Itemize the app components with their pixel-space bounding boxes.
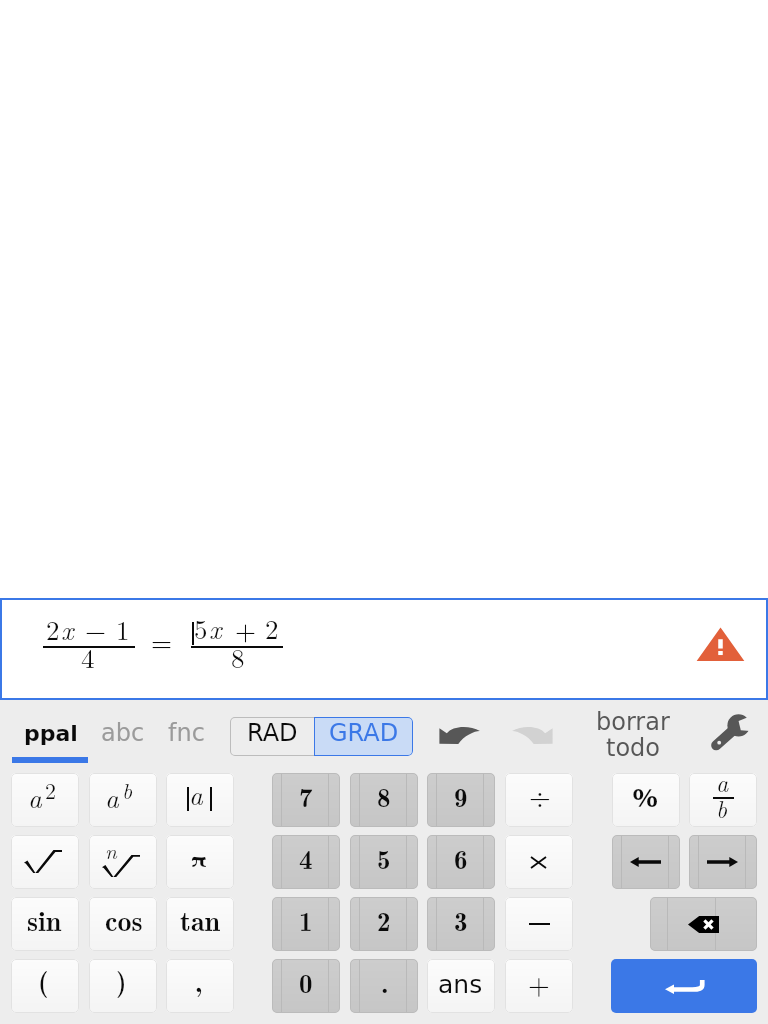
button[interactable]: Redo <box>503 714 563 754</box>
staticText: RAD <box>247 719 298 747</box>
staticText: 7 <box>299 776 313 815</box>
button[interactable]: abc <box>94 708 152 760</box>
staticText: 5 <box>377 838 391 877</box>
staticText: + <box>235 618 257 645</box>
button[interactable]: abs <box>166 773 234 827</box>
button[interactable]: a2 <box>11 773 79 827</box>
staticText: fnc <box>168 719 205 747</box>
button[interactable]: 1 <box>272 897 340 951</box>
button[interactable]: , <box>166 959 234 1013</box>
staticText: a <box>716 773 729 799</box>
staticText: a <box>105 778 119 816</box>
staticText: 5 <box>194 609 208 647</box>
staticText: ppal <box>24 721 78 747</box>
staticText: 4 <box>299 838 313 877</box>
button[interactable]: 3 <box>427 897 495 951</box>
staticText: 4 <box>81 638 95 676</box>
staticText: 1 <box>299 900 313 939</box>
button[interactable]: percent <box>612 773 680 827</box>
staticText: b <box>716 791 728 825</box>
button[interactable]: dot <box>350 959 418 1013</box>
staticText: x <box>209 609 222 647</box>
staticText: % <box>633 777 658 815</box>
staticText: a <box>28 778 42 816</box>
button[interactable]: ) <box>89 959 157 1013</box>
button[interactable]: RAD <box>230 717 315 756</box>
button[interactable]: 2 <box>0 598 768 700</box>
staticText: + <box>528 971 550 999</box>
staticText: . <box>381 962 389 1001</box>
staticText: π <box>191 844 207 875</box>
staticText: todo <box>606 734 661 762</box>
button[interactable]: 9 <box>427 773 495 827</box>
staticText: = <box>151 630 173 657</box>
button[interactable]: pi <box>166 835 234 889</box>
button[interactable]: fraction <box>689 773 757 827</box>
staticText: ( <box>38 960 49 999</box>
button[interactable]: 2 <box>350 897 418 951</box>
staticText: 2 <box>45 774 57 805</box>
staticText: , <box>195 961 203 1000</box>
staticText: 0 <box>299 962 313 1001</box>
staticText: b <box>122 774 133 805</box>
staticText: 9 <box>454 776 468 815</box>
button[interactable]: Undo <box>430 714 490 754</box>
button[interactable]: sin <box>11 897 79 951</box>
staticText: sin <box>27 899 62 939</box>
staticText: ans <box>438 970 483 999</box>
button[interactable]: 4 <box>272 835 340 889</box>
staticText: GRAD <box>329 719 399 747</box>
button[interactable]: sqrt <box>11 835 79 889</box>
button[interactable]: Enter <box>611 959 757 1013</box>
staticText: 2 <box>377 900 391 939</box>
button[interactable]: cos <box>89 897 157 951</box>
button[interactable]: Left <box>612 835 680 889</box>
staticText: abc <box>101 719 145 747</box>
button[interactable]: borrar <box>588 704 680 768</box>
button[interactable]: tan <box>166 897 234 951</box>
button[interactable]: div <box>505 773 573 827</box>
button[interactable]: Settings <box>710 715 752 751</box>
button[interactable]: nsqrt <box>89 835 157 889</box>
staticText: 3 <box>454 900 468 939</box>
button[interactable]: fnc <box>160 708 216 760</box>
staticText: tan <box>180 899 221 939</box>
button[interactable]: Backspace <box>650 897 757 951</box>
button[interactable]: Right <box>689 835 757 889</box>
button[interactable]: 8 <box>350 773 418 827</box>
staticText: 2 <box>46 610 60 648</box>
button[interactable]: mul <box>505 835 573 889</box>
staticText: ) <box>116 960 127 999</box>
staticText: ÷ <box>529 784 551 812</box>
staticText: − <box>85 618 107 645</box>
button[interactable]: ans <box>427 959 495 1013</box>
staticText: 6 <box>454 838 468 877</box>
staticText: a <box>189 775 203 813</box>
staticText: 8 <box>231 638 245 676</box>
staticText: cos <box>105 899 143 939</box>
staticText: 1 <box>116 610 130 648</box>
button[interactable]: 0 <box>272 959 340 1013</box>
staticText: 8 <box>377 776 391 815</box>
button[interactable]: ab <box>89 773 157 827</box>
button[interactable]: 5 <box>350 835 418 889</box>
button[interactable]: 6 <box>427 835 495 889</box>
button[interactable]: plus <box>505 959 573 1013</box>
button[interactable]: GRAD <box>314 717 413 756</box>
staticText: n <box>105 835 117 865</box>
staticText: x <box>61 610 74 648</box>
button[interactable]: 7 <box>272 773 340 827</box>
button[interactable]: ppal <box>14 708 86 760</box>
staticText: 2 <box>265 609 279 647</box>
button[interactable]: ( <box>11 959 79 1013</box>
staticText: borrar <box>596 708 670 736</box>
button[interactable]: minus <box>505 897 573 951</box>
button[interactable]: Error <box>699 629 742 660</box>
